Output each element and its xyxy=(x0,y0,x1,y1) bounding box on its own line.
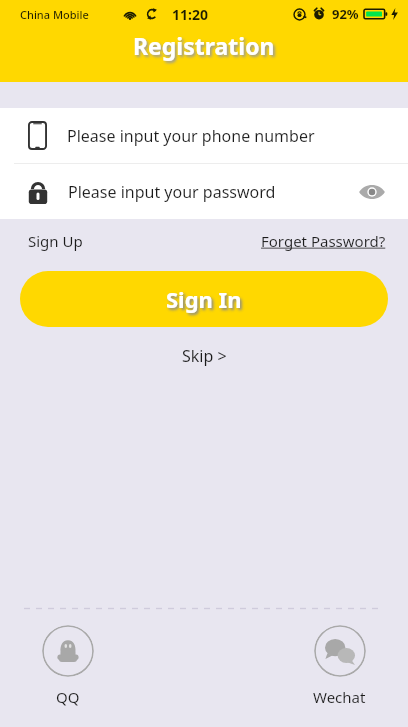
button[interactable]: Please input your password xyxy=(0,164,408,219)
staticText: Forget Password? xyxy=(261,231,386,251)
staticText: Sign In xyxy=(166,284,242,314)
button[interactable]: Sign Up xyxy=(20,225,91,257)
staticText: Skip > xyxy=(182,345,227,367)
staticText: 92% xyxy=(332,5,359,23)
button[interactable]: Please input your phone number xyxy=(0,108,408,163)
staticText: China Mobile xyxy=(20,7,89,22)
staticText: Sign Up xyxy=(28,231,83,251)
staticText: Wechat xyxy=(313,687,366,707)
button[interactable]: Forget Password? xyxy=(257,229,390,253)
staticText: QQ xyxy=(56,687,80,707)
staticText: 11:20 xyxy=(172,5,208,24)
button[interactable]: Sign in with QQ xyxy=(36,623,100,709)
staticText: Registration xyxy=(133,30,275,61)
button[interactable]: Skip > xyxy=(166,341,243,371)
button[interactable]: Show password xyxy=(348,168,396,216)
staticText: Please input your phone number xyxy=(67,125,315,147)
staticText: Please input your password xyxy=(68,181,276,203)
button[interactable]: Sign in with Wechat xyxy=(307,623,372,709)
button[interactable]: Sign In xyxy=(20,271,388,327)
